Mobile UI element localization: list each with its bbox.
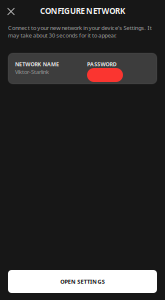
staticText: Viktor-Starlink xyxy=(15,68,49,76)
staticText: NETWORK NAME xyxy=(15,60,59,68)
staticText: OPEN SETTINGS xyxy=(60,278,105,285)
staticText: CONFIGURE NETWORK xyxy=(40,6,125,16)
button[interactable]: OPEN SETTINGS xyxy=(8,270,157,293)
button[interactable]: Close xyxy=(0,0,22,22)
staticText: PASSWORD xyxy=(87,60,117,68)
staticText: Connect to your new network in your devi… xyxy=(8,24,152,39)
